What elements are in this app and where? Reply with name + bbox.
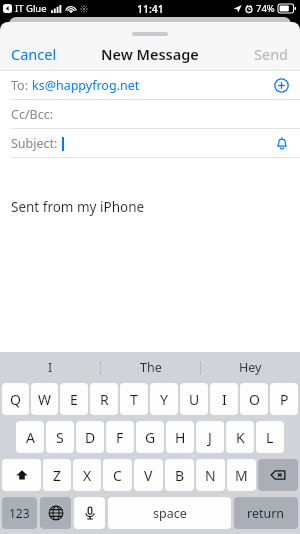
staticText: K: [236, 428, 245, 447]
button[interactable]: O: [240, 383, 268, 415]
staticText: O: [249, 390, 260, 409]
button[interactable]: Notify me: [275, 136, 289, 150]
staticText: L: [266, 428, 274, 447]
staticText: J: [208, 428, 212, 447]
staticText: IT Glue: [15, 2, 47, 15]
staticText: P: [280, 390, 289, 409]
button[interactable]: I: [210, 383, 238, 415]
button[interactable]: return: [234, 497, 298, 529]
staticText: ks@happyfrog.net: [32, 77, 140, 94]
staticText: return: [247, 505, 285, 522]
staticText: E: [70, 390, 78, 409]
button[interactable]: B: [165, 459, 194, 491]
button[interactable]: T: [120, 383, 148, 415]
staticText: Z: [53, 466, 62, 485]
button[interactable]: U: [180, 383, 208, 415]
button[interactable]: R: [90, 383, 118, 415]
button[interactable]: Q: [2, 383, 29, 415]
button[interactable]: D: [76, 421, 104, 453]
staticText: F: [116, 428, 124, 447]
staticText: S: [56, 428, 64, 447]
staticText: T: [130, 390, 138, 409]
button[interactable]: Add contact: [274, 78, 289, 93]
button[interactable]: I: [0, 352, 100, 383]
staticText: The: [140, 359, 162, 376]
button[interactable]: 123: [2, 497, 37, 529]
button[interactable]: W: [31, 383, 58, 415]
staticText: Subject:: [11, 135, 58, 152]
button[interactable]: Shift: [2, 459, 41, 491]
staticText: Send: [254, 44, 289, 64]
button[interactable]: M: [227, 459, 256, 491]
button[interactable]: Send: [243, 38, 300, 70]
staticText: Cc/Bcc:: [11, 106, 54, 123]
staticText: 74%: [256, 2, 275, 15]
staticText: Cancel: [11, 44, 57, 64]
staticText: D: [85, 428, 96, 447]
button[interactable]: S: [46, 421, 74, 453]
button[interactable]: L: [256, 421, 284, 453]
button[interactable]: Z: [43, 459, 71, 491]
button[interactable]: G: [136, 421, 164, 453]
button[interactable]: A: [16, 421, 44, 453]
staticText: H: [175, 428, 186, 447]
staticText: N: [205, 466, 216, 485]
button[interactable]: Subject:: [0, 129, 300, 157]
staticText: Q: [10, 390, 21, 409]
button[interactable]: H: [166, 421, 194, 453]
staticText: R: [100, 390, 109, 409]
button[interactable]: The: [101, 352, 200, 383]
button[interactable]: Backspace: [258, 459, 298, 491]
staticText: X: [83, 466, 92, 485]
staticText: M: [235, 466, 248, 485]
staticText: 11:41: [137, 2, 164, 16]
staticText: Hey: [239, 359, 262, 376]
staticText: I: [222, 390, 227, 409]
button[interactable]: To:: [0, 71, 300, 99]
staticText: 123: [9, 505, 30, 521]
button[interactable]: space: [108, 497, 231, 529]
staticText: space: [153, 505, 187, 522]
button[interactable]: Cc/Bcc:: [0, 100, 300, 128]
staticText: B: [175, 466, 185, 485]
staticText: U: [189, 390, 200, 409]
button[interactable]: C: [103, 459, 132, 491]
staticText: To:: [11, 77, 32, 94]
button[interactable]: V: [134, 459, 163, 491]
button[interactable]: Cancel: [0, 38, 68, 70]
button[interactable]: J: [196, 421, 224, 453]
button[interactable]: Y: [150, 383, 178, 415]
staticText: Sent from my iPhone: [11, 198, 145, 216]
button[interactable]: E: [60, 383, 88, 415]
staticText: C: [113, 466, 122, 485]
staticText: I: [48, 359, 53, 376]
button[interactable]: P: [270, 383, 298, 415]
staticText: Y: [160, 390, 168, 409]
staticText: G: [145, 428, 156, 447]
staticText: New Message: [101, 44, 199, 64]
button[interactable]: N: [196, 459, 225, 491]
button[interactable]: Hey: [201, 352, 300, 383]
staticText: W: [38, 390, 52, 409]
button[interactable]: F: [106, 421, 134, 453]
button[interactable]: Emoji keyboard: [40, 497, 71, 529]
staticText: A: [26, 428, 35, 447]
button[interactable]: X: [73, 459, 101, 491]
button[interactable]: Dictate: [74, 497, 105, 529]
button[interactable]: K: [226, 421, 254, 453]
staticText: V: [144, 466, 153, 485]
